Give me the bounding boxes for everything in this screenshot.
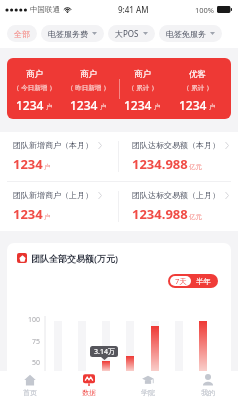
staticText: 1234 (179, 97, 207, 113)
staticText: 优客 (189, 69, 206, 80)
staticText: 团队达标交易额（本月） (132, 140, 220, 150)
staticText: 电签免服务 (166, 29, 206, 39)
staticText: 团队新增商户（本月） (13, 140, 93, 150)
button[interactable]: 数据 (59, 371, 118, 400)
button[interactable]: 7天 (170, 276, 191, 286)
other: 我的 (202, 374, 214, 386)
button[interactable]: 团队新增商户（上月） (0, 182, 118, 231)
staticText: 首页 (23, 388, 37, 397)
staticText: 3.14万 (94, 347, 115, 357)
button[interactable]: 团队新增商户（本月） (0, 132, 118, 181)
staticText: 户 (46, 103, 53, 111)
staticText: 学院 (141, 388, 155, 397)
staticText: 户 (209, 103, 216, 111)
staticText: 户 (154, 103, 161, 111)
staticText: 1234.988 (132, 155, 188, 173)
staticText: 中国联通 (30, 5, 60, 14)
staticText: 团队新增商户（上月） (13, 190, 93, 200)
staticText: 户 (100, 103, 107, 111)
staticText: 大POS (115, 28, 139, 39)
button[interactable]: 团队达标交易额（上月） (119, 182, 238, 231)
button[interactable]: 电签服务费 (41, 25, 104, 42)
button[interactable]: 商户 (67, 58, 110, 119)
other: 数据 (83, 374, 95, 386)
button[interactable]: 半年 (191, 276, 216, 286)
staticText: 1234 (70, 97, 98, 113)
staticText: （ 累计 ） (183, 83, 213, 92)
staticText: 75 (32, 337, 41, 345)
staticText: 户 (44, 213, 51, 221)
button[interactable]: 优客 (179, 58, 216, 119)
staticText: 商户 (80, 69, 97, 80)
button[interactable]: 团队达标交易额（本月） (119, 132, 238, 181)
staticText: 我的 (201, 388, 215, 397)
staticText: 1234 (124, 97, 152, 113)
staticText: 亿元 (189, 163, 202, 171)
button[interactable]: 大POS (108, 25, 155, 42)
button[interactable]: 电签免服务 (159, 25, 222, 42)
staticText: 团队全部交易额(万元) (31, 252, 119, 264)
other: 首页 (24, 374, 36, 386)
staticText: 100% (195, 5, 215, 15)
button[interactable]: 商户 (124, 58, 161, 119)
staticText: 7天 (175, 276, 187, 286)
button[interactable]: 商户 (13, 58, 56, 119)
staticText: 1234.988 (132, 205, 188, 223)
staticText: （ 今日新增 ） (13, 83, 56, 92)
staticText: 全部 (14, 29, 30, 39)
button[interactable]: 全部 (7, 25, 37, 42)
staticText: 1234 (16, 97, 44, 113)
button[interactable]: 我的 (178, 371, 238, 400)
button[interactable]: 学院 (118, 371, 178, 400)
staticText: 1234 (13, 155, 43, 173)
other: 学院 (142, 374, 154, 386)
staticText: 半年 (196, 277, 211, 286)
staticText: 9:41 AM (118, 4, 149, 15)
staticText: 户 (44, 163, 51, 171)
staticText: （ 累计 ） (128, 83, 158, 92)
button[interactable]: 首页 (0, 371, 59, 400)
staticText: 100 (28, 315, 41, 323)
staticText: 商户 (26, 69, 43, 80)
staticText: 数据 (82, 388, 96, 397)
staticText: 电签服务费 (48, 29, 88, 39)
staticText: 商户 (134, 69, 151, 80)
staticText: （ 昨日新增 ） (67, 83, 110, 92)
staticText: 1234 (13, 205, 43, 223)
staticText: 亿元 (189, 213, 202, 221)
staticText: 团队达标交易额（上月） (132, 190, 220, 200)
staticText: 50 (32, 358, 41, 366)
